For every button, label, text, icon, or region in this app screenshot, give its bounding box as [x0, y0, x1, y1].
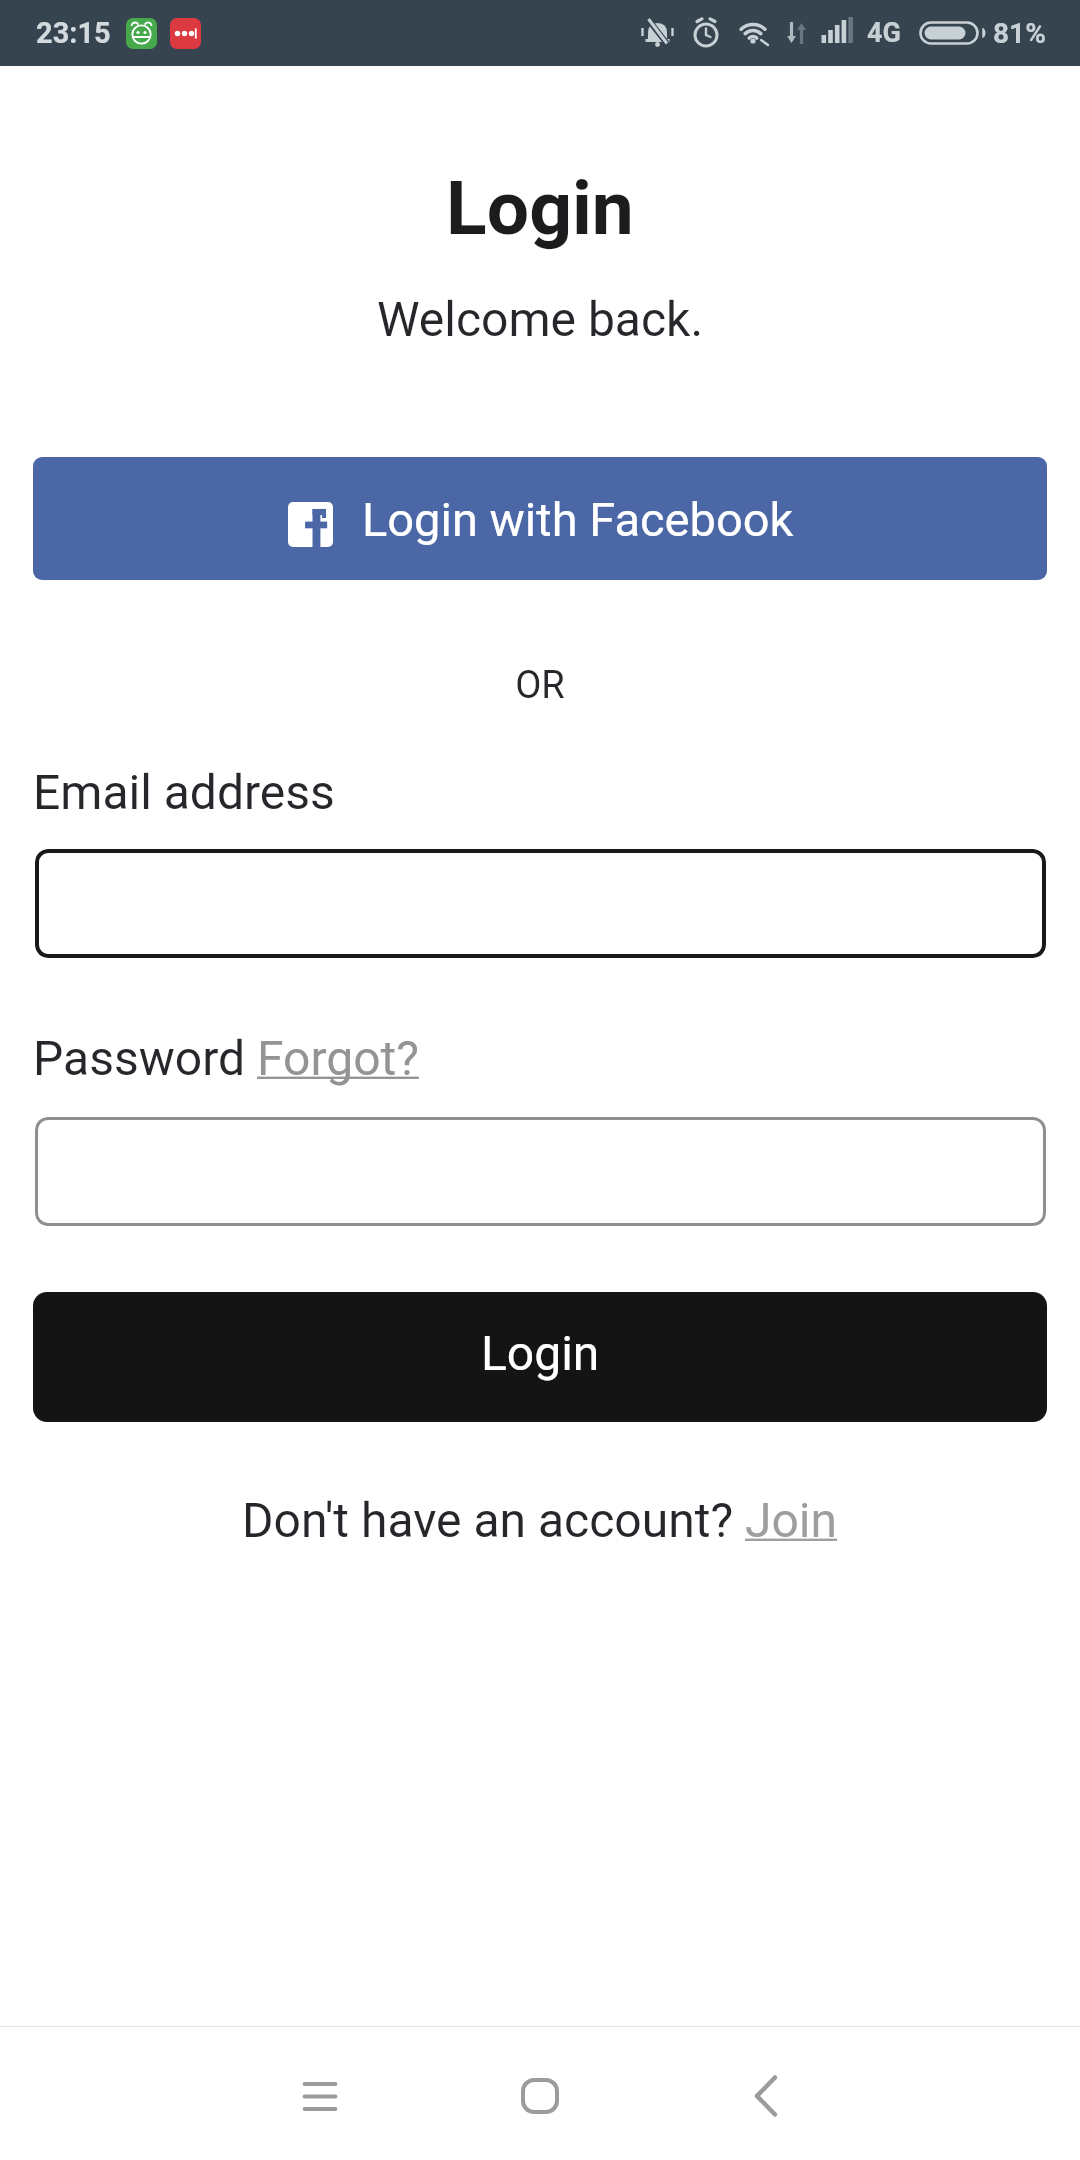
staticText: 4G — [867, 17, 901, 49]
staticText: 81% — [993, 17, 1046, 50]
staticText: Email address — [33, 764, 335, 820]
button[interactable] — [35, 849, 1046, 958]
button[interactable]: Join — [745, 1492, 838, 1548]
staticText: Password — [33, 1030, 257, 1086]
button[interactable] — [35, 1117, 1046, 1226]
staticText: Don't have an account? — [242, 1492, 745, 1548]
staticText: Welcome back. — [0, 291, 1080, 347]
staticText: OR — [0, 663, 1080, 708]
button[interactable]: Login with Facebook — [33, 457, 1047, 580]
staticText: Login with Facebook — [362, 492, 794, 547]
staticText: Login — [481, 1325, 600, 1381]
staticText: 23:15 — [36, 16, 111, 50]
button[interactable] — [505, 2061, 575, 2131]
staticText: Login — [0, 164, 1080, 252]
button[interactable]: Forgot? — [257, 1030, 419, 1086]
button[interactable]: Login — [33, 1292, 1047, 1422]
button[interactable] — [731, 2061, 801, 2131]
button[interactable] — [285, 2061, 355, 2131]
